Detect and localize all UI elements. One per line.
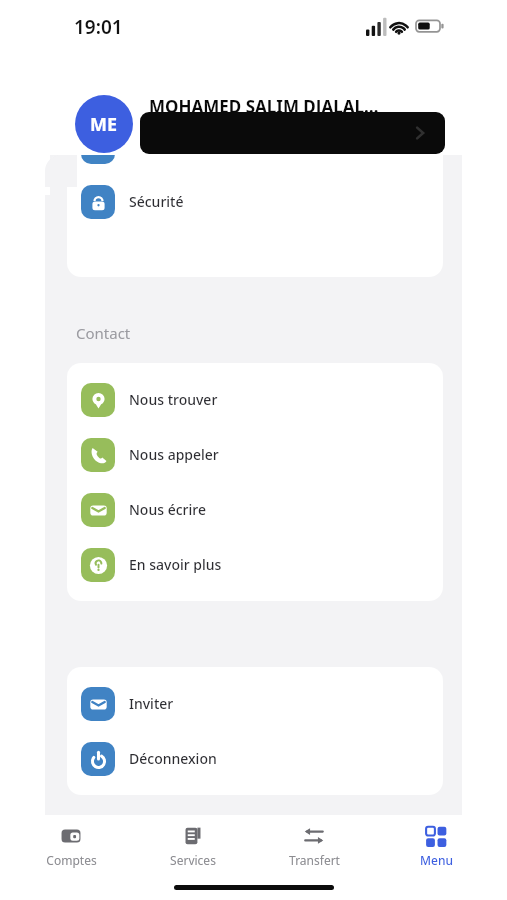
button[interactable]: Inviter (67, 676, 443, 731)
staticText: Comptes (46, 852, 97, 868)
staticText: Menu (420, 852, 453, 868)
button[interactable]: Sécurité (67, 174, 443, 229)
staticText: 19:01 (74, 14, 123, 40)
button[interactable]: Nous trouver (67, 372, 443, 427)
button[interactable]: En savoir plus (67, 537, 443, 592)
button[interactable]: Menu (386, 815, 486, 879)
button[interactable]: Nous écrire (67, 482, 443, 537)
staticText: ME (90, 112, 118, 137)
staticText: Nous appeler (129, 445, 219, 464)
other: Ouvrir le profil (412, 125, 428, 141)
staticText: Nous écrire (129, 500, 206, 519)
staticText: En savoir plus (129, 555, 222, 574)
staticText: Inviter (129, 694, 174, 713)
staticText: Déconnexion (129, 749, 217, 768)
staticText: Transfert (289, 852, 340, 868)
button[interactable]: Profil (67, 119, 443, 174)
staticText: Nous trouver (129, 390, 218, 409)
staticText: Services (170, 852, 216, 868)
button[interactable]: ME (0, 92, 507, 165)
staticText: MOHAMED SALIM DJALAL… (149, 95, 404, 118)
button[interactable]: Transfert (264, 815, 364, 879)
button[interactable]: Déconnexion (67, 731, 443, 786)
button[interactable]: Nous appeler (67, 427, 443, 482)
staticText: Sécurité (129, 192, 184, 211)
button[interactable]: Comptes (21, 815, 121, 879)
staticText: Contact (76, 323, 131, 343)
staticText: Profil (129, 137, 165, 156)
button[interactable]: Services (143, 815, 243, 879)
